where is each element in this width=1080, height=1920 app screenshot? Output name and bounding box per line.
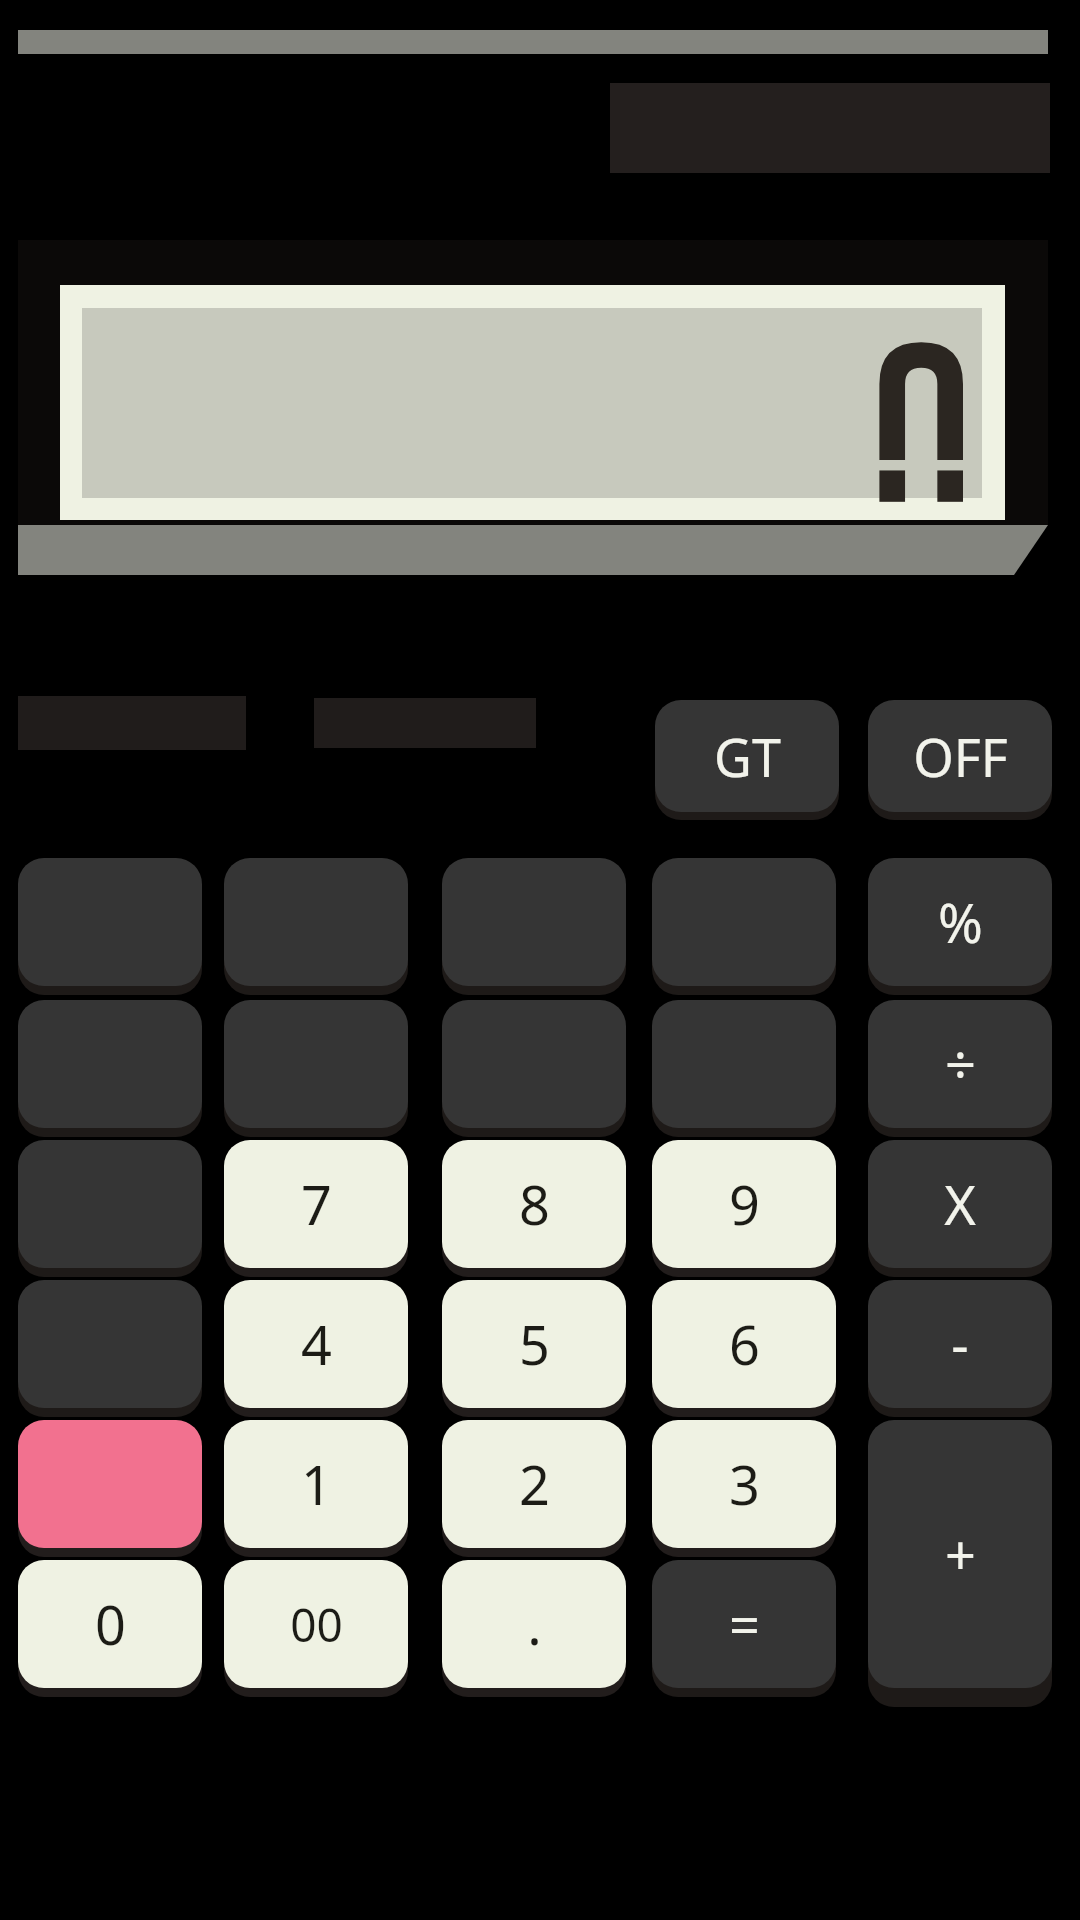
button[interactable]: Function key <box>652 1000 836 1137</box>
button[interactable]: Function key <box>224 858 408 995</box>
button[interactable]: + <box>868 1420 1052 1707</box>
button[interactable]: Function key <box>18 1000 202 1137</box>
button[interactable]: 3 <box>652 1420 836 1557</box>
button[interactable]: Function key <box>442 1000 626 1137</box>
staticText: GT <box>714 721 781 792</box>
button[interactable]: 00 <box>224 1560 408 1697</box>
button[interactable]: 5 <box>442 1280 626 1417</box>
button[interactable]: X <box>868 1140 1052 1277</box>
staticText: 6 <box>729 1307 760 1381</box>
button[interactable]: = <box>652 1560 836 1697</box>
button[interactable]: 6 <box>652 1280 836 1417</box>
button[interactable]: - <box>868 1280 1052 1417</box>
staticText: = <box>729 1587 760 1661</box>
button[interactable]: GT <box>655 700 839 820</box>
button[interactable]: Function key <box>18 858 202 995</box>
staticText: 7 <box>301 1167 332 1241</box>
staticText: 8 <box>519 1167 550 1241</box>
staticText: 9 <box>729 1167 760 1241</box>
staticText: 3 <box>729 1447 760 1521</box>
button[interactable]: % <box>868 858 1052 995</box>
button[interactable]: Function key <box>18 1280 202 1417</box>
staticText: OFF <box>913 721 1008 792</box>
button[interactable]: 7 <box>224 1140 408 1277</box>
button[interactable]: Clear <box>18 1420 202 1557</box>
staticText: 5 <box>519 1307 550 1381</box>
button[interactable]: ÷ <box>868 1000 1052 1137</box>
button[interactable]: OFF <box>868 700 1052 820</box>
button[interactable]: Function key <box>442 858 626 995</box>
staticText: . <box>527 1587 542 1661</box>
staticText: - <box>951 1307 969 1381</box>
staticText: ÷ <box>945 1027 976 1101</box>
staticText: % <box>938 885 983 959</box>
button[interactable]: Function key <box>224 1000 408 1137</box>
button[interactable]: 8 <box>442 1140 626 1277</box>
button[interactable]: 4 <box>224 1280 408 1417</box>
button[interactable]: 1 <box>224 1420 408 1557</box>
staticText: 1 <box>301 1447 332 1521</box>
button[interactable]: 0 <box>18 1560 202 1697</box>
button[interactable]: 9 <box>652 1140 836 1277</box>
staticText: 0 <box>95 1587 126 1661</box>
button[interactable]: . <box>442 1560 626 1697</box>
staticText: 00 <box>290 1593 343 1656</box>
button[interactable]: 2 <box>442 1420 626 1557</box>
staticText: X <box>944 1167 976 1241</box>
button[interactable]: Function key <box>18 1140 202 1277</box>
button[interactable]: Function key <box>652 858 836 995</box>
staticText: + <box>945 1517 976 1591</box>
staticText: 4 <box>301 1307 332 1381</box>
staticText: 2 <box>519 1447 550 1521</box>
